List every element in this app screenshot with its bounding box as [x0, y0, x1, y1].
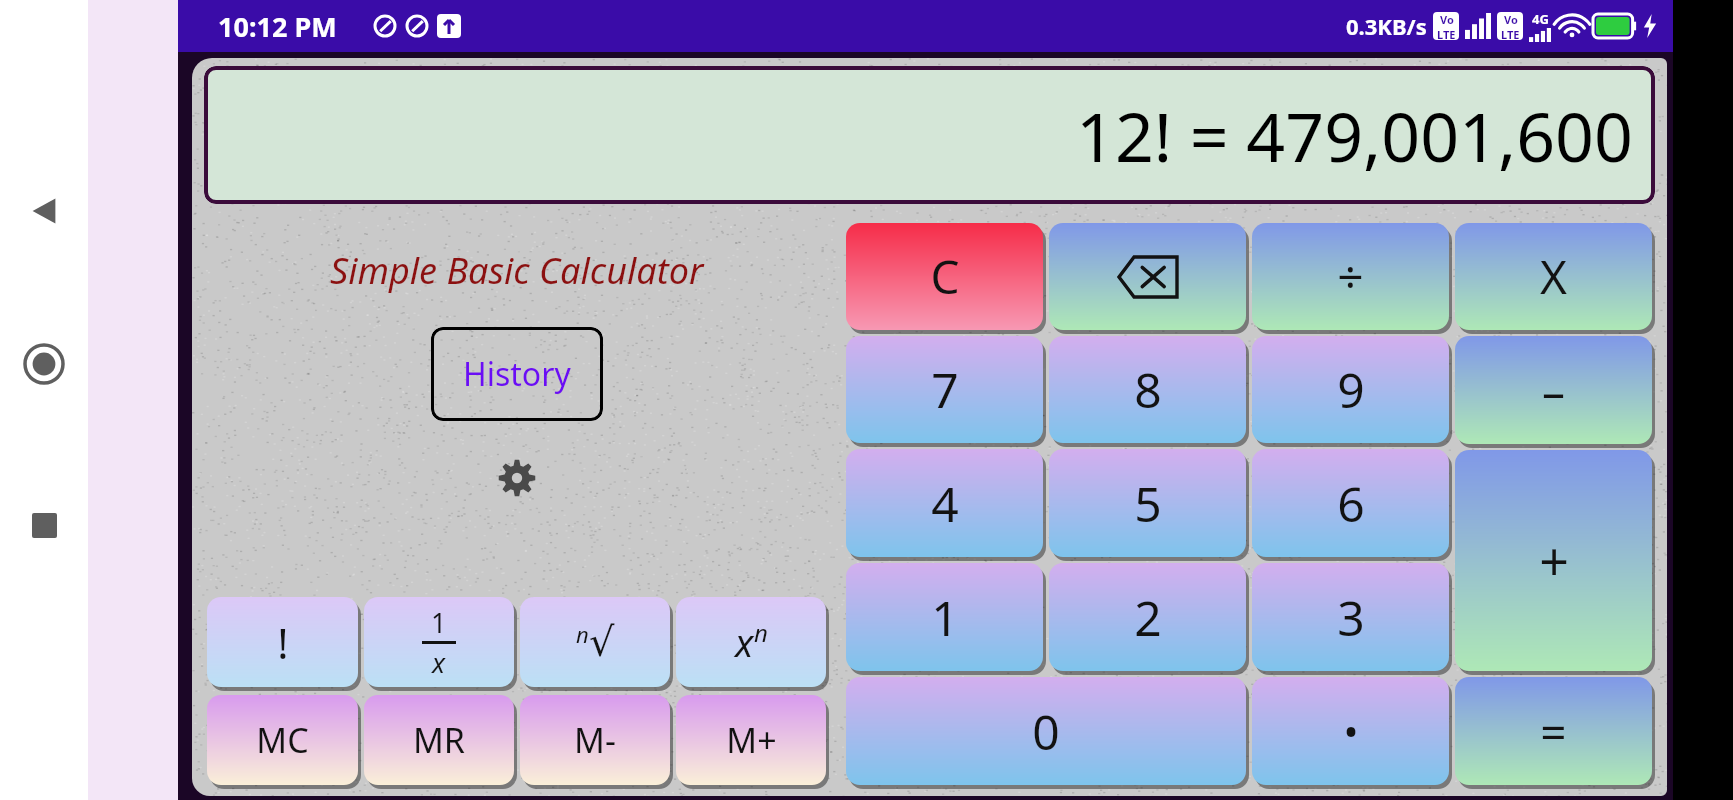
- staticText: x: [735, 616, 754, 668]
- staticText: M+: [726, 717, 777, 763]
- button[interactable]: 5: [1049, 449, 1246, 557]
- staticText: n: [754, 616, 768, 649]
- button[interactable]: M-: [520, 695, 670, 785]
- button[interactable]: 12! = 479,001,600: [204, 66, 1655, 204]
- button[interactable]: C: [846, 223, 1043, 330]
- button[interactable]: Home: [18, 338, 70, 390]
- button[interactable]: =: [1455, 677, 1652, 785]
- staticText: !: [277, 614, 289, 671]
- button[interactable]: 3: [1252, 563, 1449, 671]
- staticText: 9: [1337, 357, 1365, 422]
- button[interactable]: n: [520, 597, 670, 687]
- staticText: LTE: [1437, 27, 1456, 40]
- staticText: 5: [1134, 471, 1162, 536]
- button[interactable]: 2: [1049, 563, 1246, 671]
- staticText: +: [1539, 525, 1569, 596]
- staticText: n: [576, 619, 589, 649]
- button[interactable]: Back: [21, 188, 67, 234]
- staticText: –: [1542, 359, 1565, 422]
- button[interactable]: 4: [846, 449, 1043, 557]
- staticText: 1: [431, 604, 447, 641]
- staticText: x: [432, 644, 446, 681]
- staticText: Simple Basic Calculator: [330, 246, 704, 295]
- staticText: MR: [413, 717, 465, 763]
- button[interactable]: 1: [364, 597, 514, 687]
- staticText: 10:12 PM: [218, 8, 337, 45]
- button[interactable]: 6: [1252, 449, 1449, 557]
- button[interactable]: 0: [846, 677, 1246, 785]
- staticText: 0.3KB/s: [1346, 11, 1427, 41]
- button[interactable]: M+: [676, 695, 826, 785]
- staticText: 8: [1134, 357, 1162, 422]
- staticText: X: [1540, 245, 1567, 308]
- button[interactable]: !: [207, 597, 358, 687]
- button[interactable]: 8: [1049, 336, 1246, 443]
- button[interactable]: History: [431, 327, 603, 421]
- staticText: √: [589, 619, 615, 666]
- button[interactable]: 1: [846, 563, 1043, 671]
- staticText: LTE: [1501, 27, 1520, 40]
- staticText: 4: [931, 471, 959, 536]
- button[interactable]: Recents: [21, 502, 67, 548]
- button[interactable]: –: [1455, 336, 1652, 444]
- button[interactable]: X: [1455, 223, 1652, 330]
- staticText: 0: [1032, 699, 1060, 764]
- staticText: C: [930, 245, 960, 308]
- staticText: 12! = 479,001,600: [1076, 89, 1633, 182]
- button[interactable]: 7: [846, 336, 1043, 443]
- staticText: Vo: [1440, 12, 1454, 27]
- staticText: ÷: [1337, 245, 1364, 308]
- staticText: 7: [931, 357, 959, 422]
- button[interactable]: MC: [207, 695, 358, 785]
- button[interactable]: ÷: [1252, 223, 1449, 330]
- staticText: MC: [256, 717, 309, 763]
- staticText: Vo: [1504, 12, 1518, 27]
- button[interactable]: •: [1252, 677, 1449, 785]
- staticText: 6: [1337, 471, 1365, 536]
- staticText: =: [1540, 700, 1567, 763]
- staticText: 3: [1337, 585, 1365, 650]
- button[interactable]: 9: [1252, 336, 1449, 443]
- button[interactable]: MR: [364, 695, 514, 785]
- button[interactable]: x: [676, 597, 826, 687]
- staticText: •: [1343, 704, 1359, 758]
- staticText: 2: [1134, 585, 1162, 650]
- staticText: 4G: [1532, 10, 1549, 28]
- staticText: M-: [574, 717, 616, 763]
- button[interactable]: +: [1455, 450, 1652, 671]
- staticText: History: [463, 352, 571, 396]
- staticText: 1: [931, 585, 959, 650]
- button[interactable]: [1049, 223, 1246, 330]
- button[interactable]: Settings: [490, 451, 544, 505]
